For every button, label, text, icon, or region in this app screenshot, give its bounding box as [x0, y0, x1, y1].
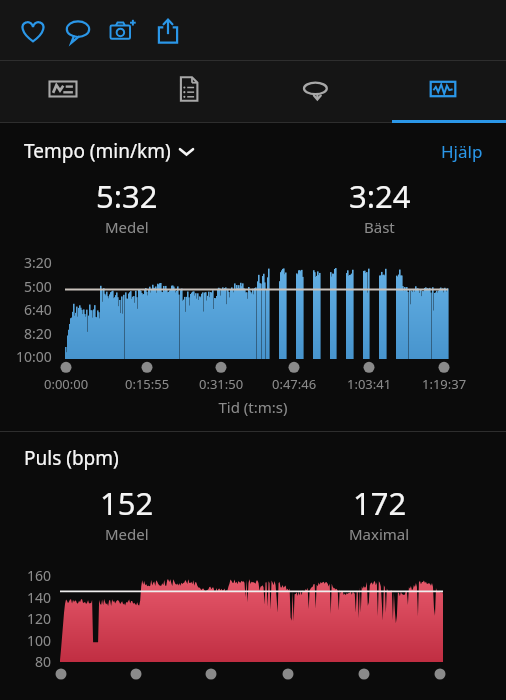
button[interactable]: Map — [0, 61, 126, 123]
staticText: 10:00 — [16, 347, 52, 366]
staticText: 80 — [35, 652, 52, 671]
staticText: 5:00 — [24, 277, 52, 296]
button[interactable]: Puls (bpm) — [24, 445, 119, 471]
button[interactable]: Share — [145, 8, 190, 53]
staticText: 140 — [27, 588, 52, 607]
staticText: 0:15:55 — [125, 375, 170, 393]
staticText: 3:24 — [349, 175, 411, 217]
staticText: 0:47:46 — [272, 375, 317, 393]
staticText: 1:03:41 — [347, 375, 392, 393]
staticText: 100 — [27, 631, 52, 650]
staticText: 0:00:00 — [44, 375, 89, 393]
staticText: 1:19:37 — [422, 375, 467, 393]
staticText: Puls (bpm) — [24, 445, 119, 471]
staticText: 6:40 — [24, 300, 52, 319]
button[interactable]: Comment — [55, 8, 100, 53]
button[interactable]: Hjälp — [438, 137, 486, 166]
button[interactable]: Laps — [252, 61, 379, 123]
staticText: Maximal — [349, 524, 410, 544]
staticText: Medel — [105, 524, 149, 544]
staticText: 5:32 — [96, 175, 158, 217]
button[interactable]: Like — [10, 8, 55, 53]
staticText: Bäst — [364, 217, 395, 237]
staticText: 3:20 — [24, 253, 52, 272]
staticText: 152 — [100, 482, 154, 524]
button[interactable]: Details — [126, 61, 252, 123]
staticText: Medel — [105, 217, 149, 237]
staticText: 120 — [27, 609, 52, 628]
button[interactable]: Add photo — [100, 8, 145, 53]
button[interactable]: Tempo (min/km) — [24, 135, 193, 167]
staticText: Tempo (min/km) — [24, 138, 171, 164]
staticText: 172 — [353, 482, 407, 524]
button[interactable]: Charts — [379, 61, 506, 123]
staticText: 0:31:50 — [199, 375, 244, 393]
staticText: Tid (t:m:s) — [0, 397, 506, 417]
staticText: Hjälp — [441, 140, 483, 163]
staticText: 8:20 — [24, 324, 52, 343]
staticText: 160 — [27, 566, 52, 585]
